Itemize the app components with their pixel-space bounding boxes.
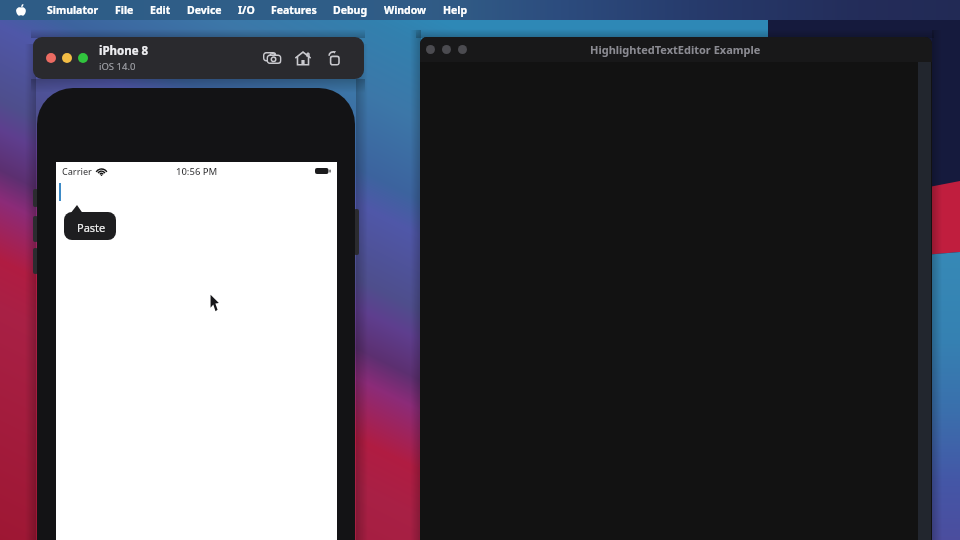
button[interactable]: Zoom [78,53,88,63]
button[interactable]: Minimise [62,53,72,63]
staticText: iOS 14.0 [99,60,136,73]
button[interactable]: Window button [442,45,451,54]
button[interactable]: Close [46,53,56,63]
staticText: File [115,3,134,17]
button[interactable]: Home [290,45,316,71]
staticText: Window [384,3,427,17]
button[interactable]: Window [376,1,435,19]
button[interactable]: I/O [230,1,263,19]
button[interactable]: Window button [458,45,467,54]
staticText: 10:56 PM [176,165,218,178]
staticText: iPhone 8 [99,43,149,59]
staticText: Features [271,3,317,17]
staticText: Debug [333,3,368,17]
button[interactable]: Device [179,1,230,19]
button[interactable]: Features [263,1,325,19]
button[interactable]: Edit [142,1,179,19]
button[interactable]: Apple menu [13,2,29,18]
button[interactable]: Debug [325,1,376,19]
staticText: Device [187,3,222,17]
staticText: Edit [150,3,171,17]
button[interactable]: Screenshot [259,45,285,71]
button[interactable]: Window button [426,45,435,54]
staticText: Paste [77,220,106,235]
button[interactable]: Simulator [39,1,107,19]
button[interactable]: Help [435,1,476,19]
button[interactable]: Rotate [321,45,347,71]
staticText: Simulator [47,3,99,17]
staticText: Help [443,3,468,17]
staticText: I/O [238,3,255,17]
staticText: HighlightedTextEditor Example [590,42,761,57]
button[interactable]: File [107,1,142,19]
staticText: Carrier [62,165,92,177]
